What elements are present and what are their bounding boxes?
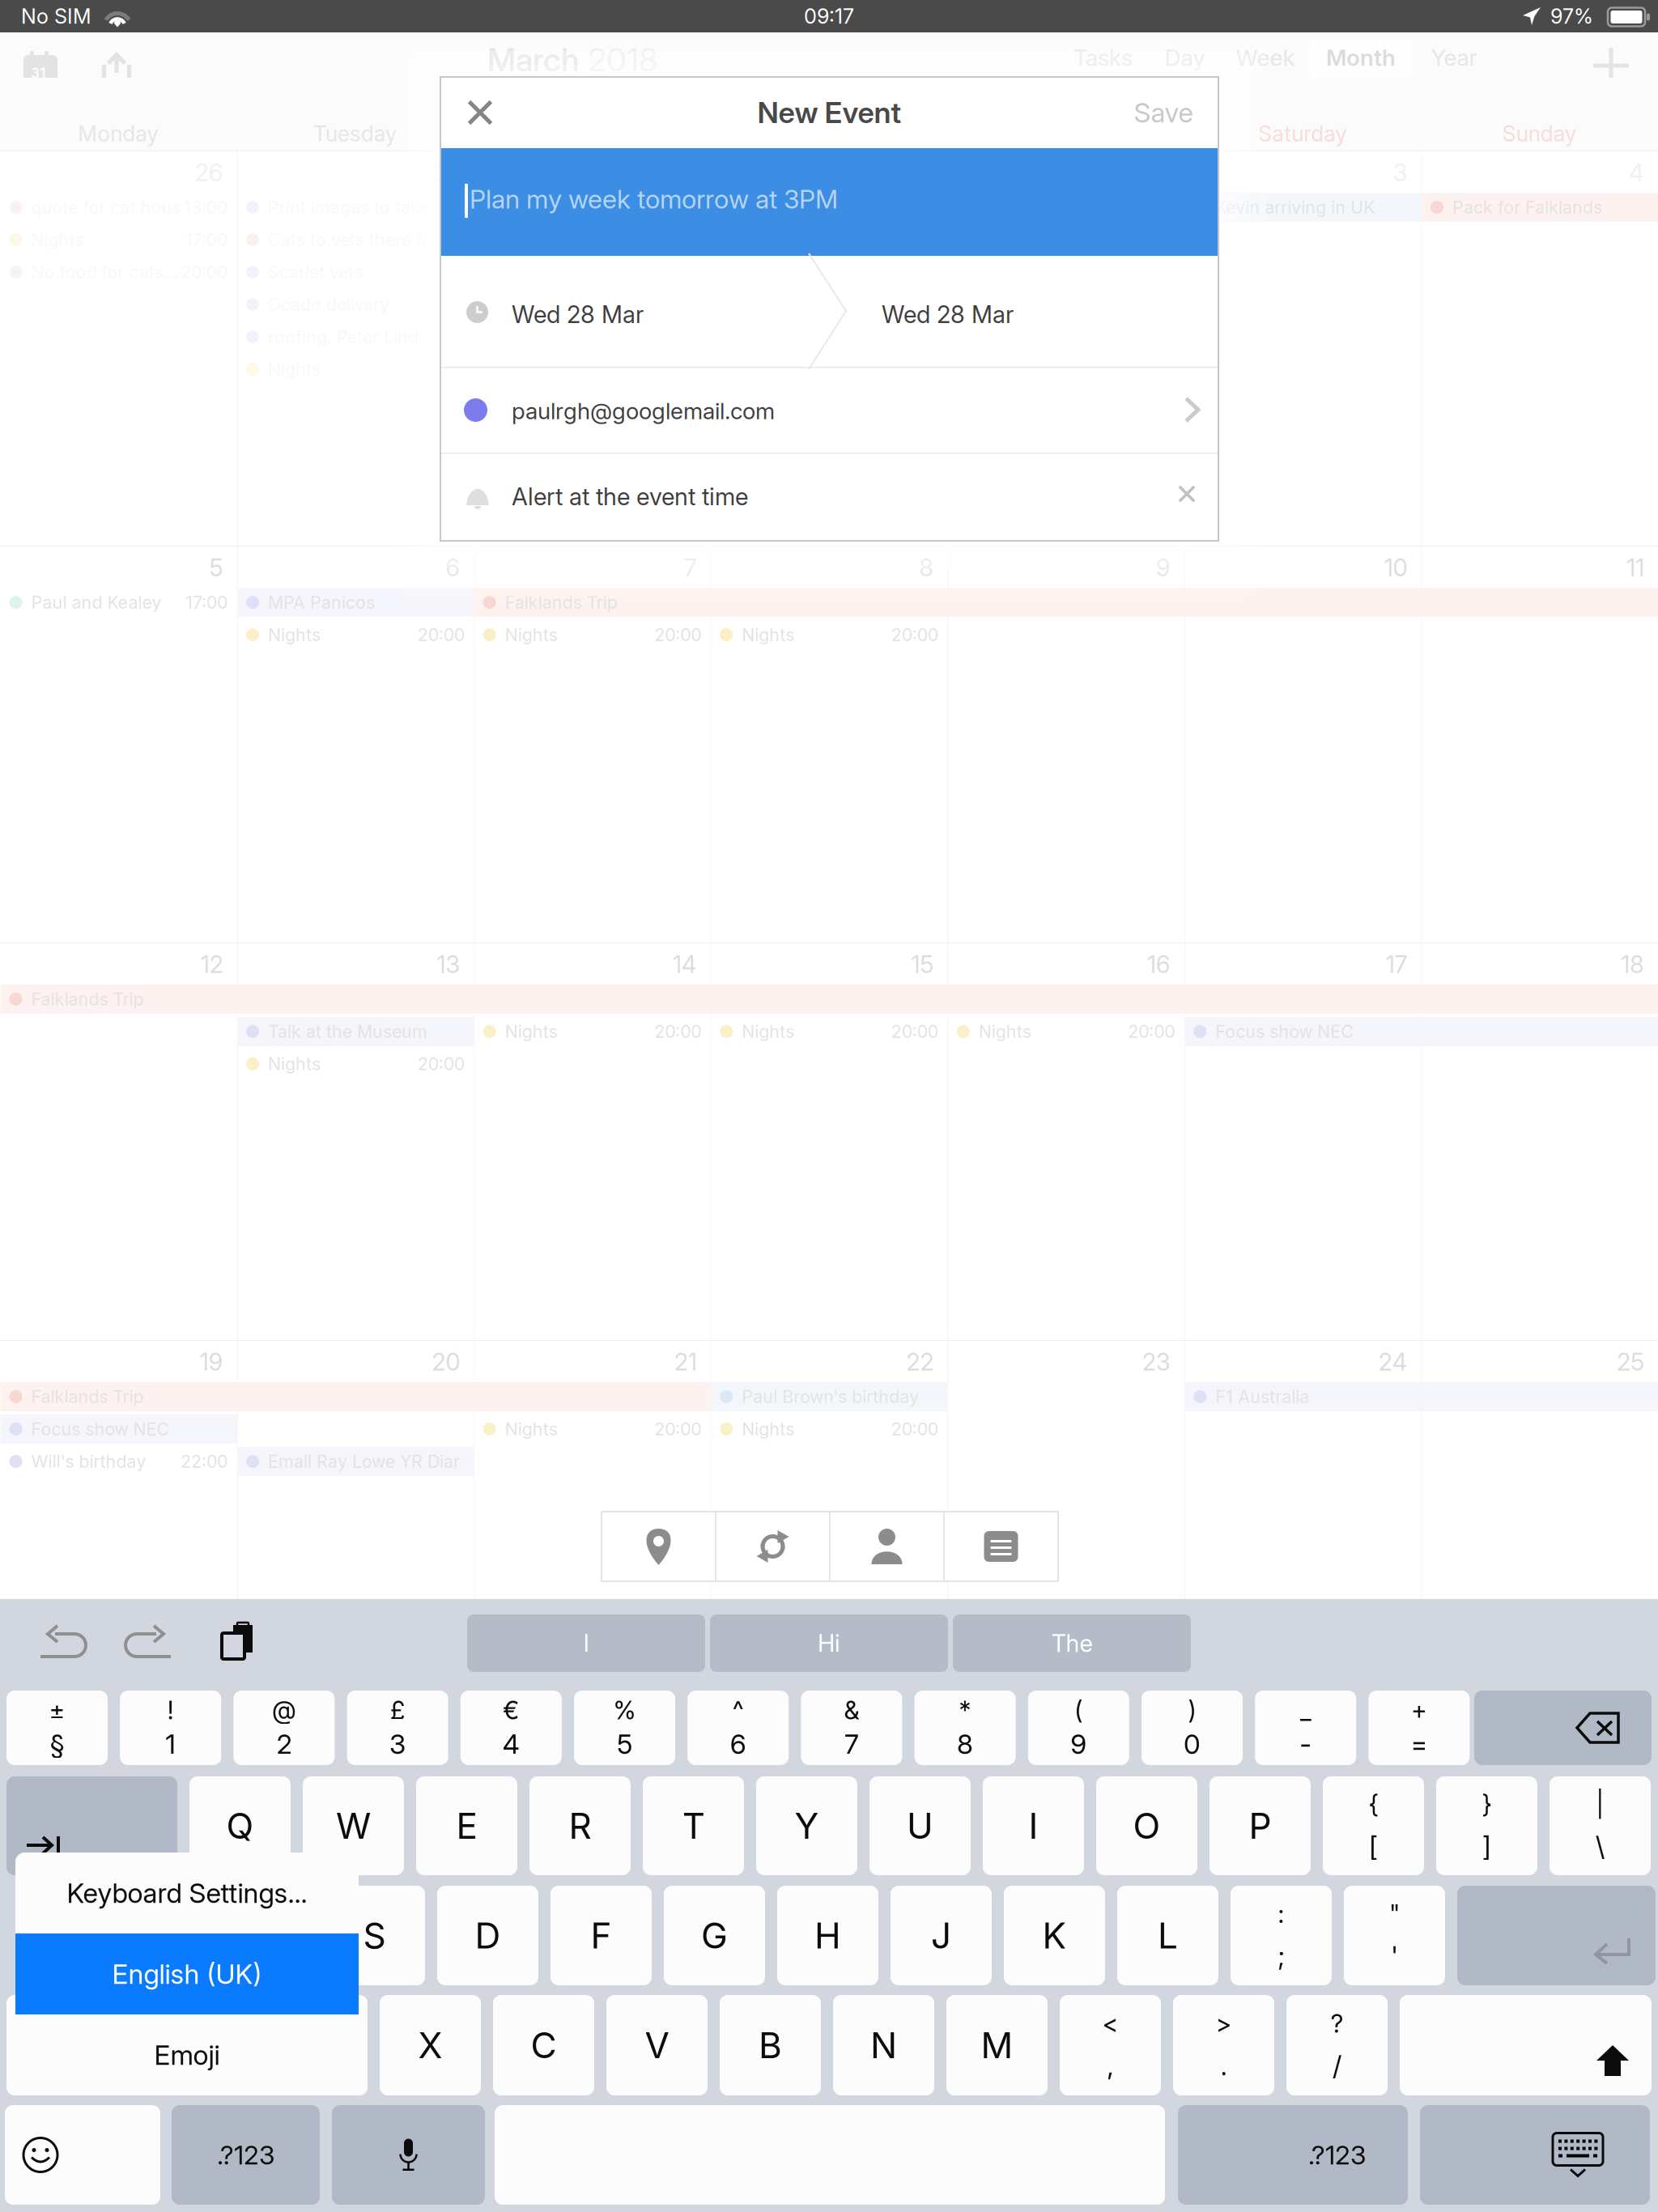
button[interactable]: * xyxy=(914,1691,1016,1765)
staticText: 10 xyxy=(1384,554,1407,582)
button[interactable]: A xyxy=(210,1886,312,1985)
button[interactable]: Remove alert xyxy=(1172,479,1201,508)
button[interactable]: Dictation xyxy=(332,2105,485,2205)
button[interactable]: € xyxy=(460,1691,562,1765)
button[interactable]: L xyxy=(1117,1886,1218,1985)
button[interactable]: F xyxy=(551,1886,652,1985)
button[interactable]: " xyxy=(1344,1886,1445,1985)
button[interactable]: T xyxy=(643,1776,744,1875)
button[interactable]: U xyxy=(869,1776,971,1875)
button[interactable]: Calendars xyxy=(23,51,57,85)
button[interactable]: G xyxy=(664,1886,765,1985)
button[interactable]: .?123 xyxy=(172,2105,320,2205)
button[interactable]: Space xyxy=(495,2105,1165,2205)
button[interactable]: Keyboard Settings... xyxy=(15,1853,359,1933)
button[interactable]: New event xyxy=(1592,47,1630,84)
button[interactable]: E xyxy=(416,1776,517,1875)
button[interactable]: } xyxy=(1436,1776,1537,1875)
button[interactable]: Repeat xyxy=(716,1512,830,1581)
button[interactable]: Week xyxy=(1222,36,1309,79)
button[interactable]: Q xyxy=(189,1776,291,1875)
button[interactable]: £ xyxy=(347,1691,448,1765)
button[interactable]: ( xyxy=(1028,1691,1129,1765)
button[interactable]: ~ xyxy=(154,1995,255,2095)
button[interactable]: | xyxy=(1550,1776,1651,1875)
button[interactable]: _ xyxy=(1255,1691,1356,1765)
button[interactable]: K xyxy=(1004,1886,1105,1985)
button[interactable]: X xyxy=(380,1995,481,2095)
button[interactable]: Month xyxy=(1309,36,1413,79)
button[interactable]: Undo xyxy=(39,1624,86,1663)
staticText: ' xyxy=(1391,1940,1398,1972)
button[interactable]: Emoji xyxy=(15,2014,359,2095)
button[interactable]: The xyxy=(953,1614,1191,1672)
button[interactable]: : xyxy=(1231,1886,1332,1985)
button[interactable]: + xyxy=(1368,1691,1470,1765)
button[interactable]: Save xyxy=(1111,88,1216,137)
button[interactable]: Paste xyxy=(220,1622,257,1661)
button[interactable]: J xyxy=(891,1886,992,1985)
button[interactable]: V xyxy=(606,1995,708,2095)
button[interactable]: I xyxy=(467,1614,705,1672)
button[interactable]: Year xyxy=(1413,36,1495,79)
button[interactable]: ± xyxy=(6,1691,108,1765)
staticText: 21 xyxy=(674,1348,697,1376)
button[interactable]: Redo xyxy=(125,1624,172,1663)
button[interactable]: Location xyxy=(602,1512,716,1581)
staticText: 9 xyxy=(1070,1728,1087,1760)
button[interactable]: & xyxy=(801,1691,902,1765)
button[interactable]: P xyxy=(1209,1776,1311,1875)
staticText: ] xyxy=(1482,1830,1491,1862)
button[interactable]: H xyxy=(777,1886,878,1985)
staticText: Thursday xyxy=(782,121,876,146)
button[interactable]: Invitees xyxy=(830,1512,944,1581)
button[interactable]: ? xyxy=(1286,1995,1388,2095)
button[interactable]: R xyxy=(529,1776,631,1875)
button[interactable]: .?123 xyxy=(1178,2105,1408,2205)
button[interactable]: Day xyxy=(1148,36,1222,79)
button[interactable]: Return xyxy=(1457,1886,1656,1985)
button[interactable]: > xyxy=(1173,1995,1274,2095)
staticText: I xyxy=(1029,1805,1038,1847)
button[interactable]: paulrgh@googlemail.com xyxy=(440,368,1218,453)
button[interactable]: Emoji xyxy=(5,2105,160,2205)
button[interactable]: C xyxy=(493,1995,594,2095)
button[interactable]: S xyxy=(324,1886,425,1985)
staticText: 5 xyxy=(617,1728,632,1760)
button[interactable]: % xyxy=(574,1691,675,1765)
staticText: Sunday xyxy=(1502,121,1577,146)
staticText: Plan my week tomorrow at 3PM xyxy=(470,184,838,214)
button[interactable]: ) xyxy=(1141,1691,1243,1765)
staticText: The xyxy=(1051,1629,1093,1657)
button[interactable]: I xyxy=(983,1776,1084,1875)
button[interactable]: < xyxy=(1060,1995,1161,2095)
button[interactable]: @ xyxy=(233,1691,335,1765)
button[interactable]: Tasks xyxy=(1058,36,1148,79)
button[interactable]: Shift xyxy=(1400,1995,1652,2095)
staticText: C xyxy=(531,2024,557,2066)
button[interactable]: Close xyxy=(461,94,499,131)
button[interactable]: English (UK) xyxy=(15,1933,359,2014)
button[interactable]: Y xyxy=(756,1776,857,1875)
staticText: 8 xyxy=(919,554,934,582)
button[interactable]: Shift xyxy=(6,1995,142,2095)
button[interactable]: Z xyxy=(266,1995,368,2095)
button[interactable]: ^ xyxy=(687,1691,789,1765)
staticText: { xyxy=(1369,1790,1378,1819)
button[interactable]: O xyxy=(1096,1776,1197,1875)
button[interactable]: Tab xyxy=(6,1776,177,1875)
button[interactable]: Delete xyxy=(1474,1691,1652,1765)
button[interactable]: D xyxy=(437,1886,538,1985)
button[interactable]: B xyxy=(720,1995,821,2095)
button[interactable]: M xyxy=(946,1995,1048,2095)
button[interactable]: Hi xyxy=(710,1614,948,1672)
button[interactable]: Share xyxy=(101,51,132,85)
button[interactable]: W xyxy=(303,1776,404,1875)
button[interactable]: { xyxy=(1323,1776,1424,1875)
button[interactable]: ! xyxy=(120,1691,221,1765)
button[interactable]: Notes xyxy=(944,1512,1058,1581)
button[interactable]: N xyxy=(833,1995,934,2095)
button[interactable]: Dismiss keyboard xyxy=(1420,2105,1650,2205)
